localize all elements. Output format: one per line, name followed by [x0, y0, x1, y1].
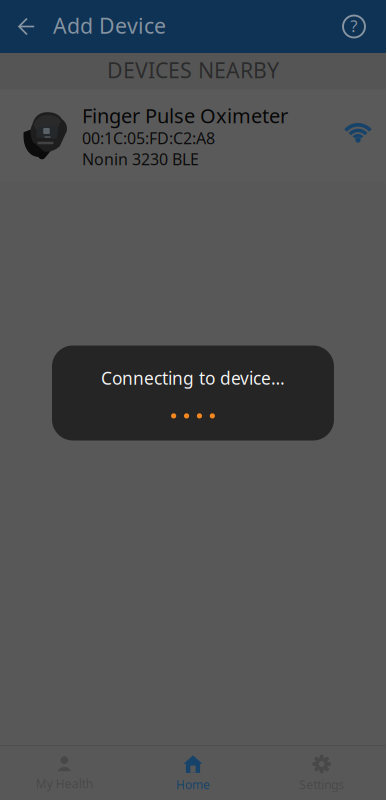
staticText: 00:1C:05:FD:C2:A8: [82, 127, 215, 149]
staticText: My Health: [36, 775, 93, 791]
staticText: Settings: [299, 776, 344, 792]
button[interactable]: Home: [129, 745, 257, 800]
button[interactable]: Back: [0, 0, 47, 53]
staticText: ?: [350, 15, 357, 37]
button[interactable]: Finger Pulse Oximeter: [0, 89, 386, 182]
staticText: Home: [176, 776, 210, 792]
staticText: DEVICES NEARBY: [107, 56, 279, 84]
staticText: Nonin 3230 BLE: [82, 148, 199, 170]
staticText: Add Device: [53, 11, 166, 40]
button[interactable]: Help: [342, 0, 386, 53]
button[interactable]: Settings: [257, 745, 386, 800]
staticText: Finger Pulse Oximeter: [82, 102, 288, 129]
staticText: Connecting to device…: [101, 366, 285, 389]
